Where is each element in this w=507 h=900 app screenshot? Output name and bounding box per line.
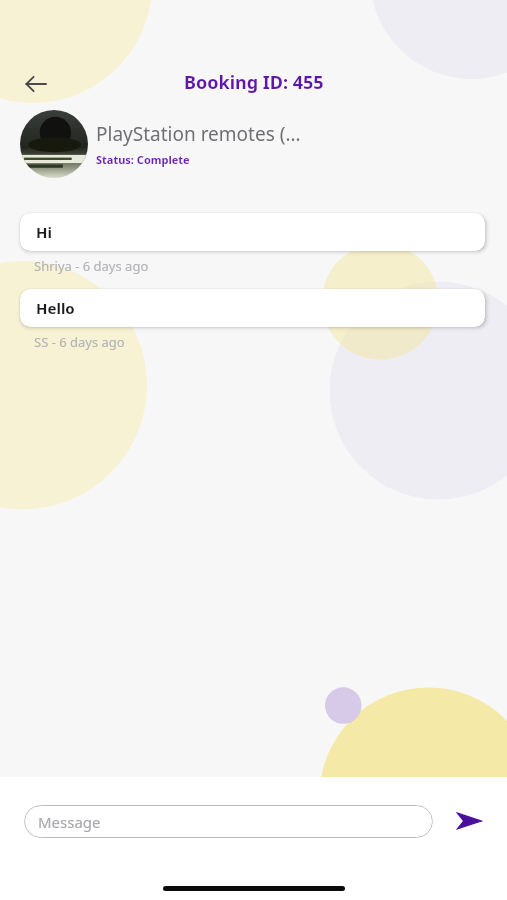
button[interactable]: PlayStation remotes (…	[20, 110, 487, 178]
staticText: SS - 6 days ago	[34, 333, 125, 351]
button[interactable]: Back	[14, 62, 58, 106]
staticText: Shriya - 6 days ago	[34, 257, 149, 275]
staticText: Status: Complete	[96, 152, 190, 167]
staticText: Hi	[36, 222, 52, 242]
button[interactable]: Hi	[20, 213, 485, 251]
staticText: Hello	[36, 298, 75, 318]
staticText: PlayStation remotes (…	[96, 121, 301, 147]
button[interactable]: Message	[24, 805, 433, 838]
button[interactable]: Send	[449, 801, 489, 841]
staticText: Message	[38, 812, 101, 832]
staticText: Booking ID: 455	[184, 70, 324, 95]
button[interactable]: Hello	[20, 289, 485, 327]
